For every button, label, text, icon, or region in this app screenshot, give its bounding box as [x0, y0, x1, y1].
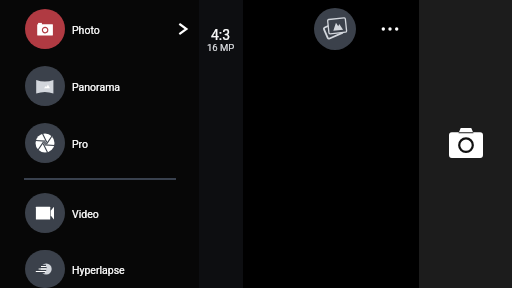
staticText: Panorama — [72, 81, 121, 93]
staticText: 16 MP — [207, 42, 235, 53]
button[interactable]: Video — [0, 193, 199, 233]
button[interactable]: Photo — [0, 9, 199, 49]
button[interactable]: Take photo — [443, 120, 489, 166]
button[interactable]: 4:3 — [199, 0, 243, 288]
staticText: Pro — [72, 138, 89, 150]
button[interactable]: Hyperlapse — [0, 250, 199, 288]
button[interactable]: More options — [372, 11, 408, 47]
button[interactable]: Gallery — [314, 8, 356, 50]
staticText: Hyperlapse — [72, 264, 125, 276]
staticText: Photo — [72, 24, 100, 36]
staticText: Video — [72, 208, 99, 220]
staticText: 4:3 — [211, 27, 231, 43]
button[interactable]: Panorama — [0, 66, 199, 106]
button[interactable]: Pro — [0, 123, 199, 163]
